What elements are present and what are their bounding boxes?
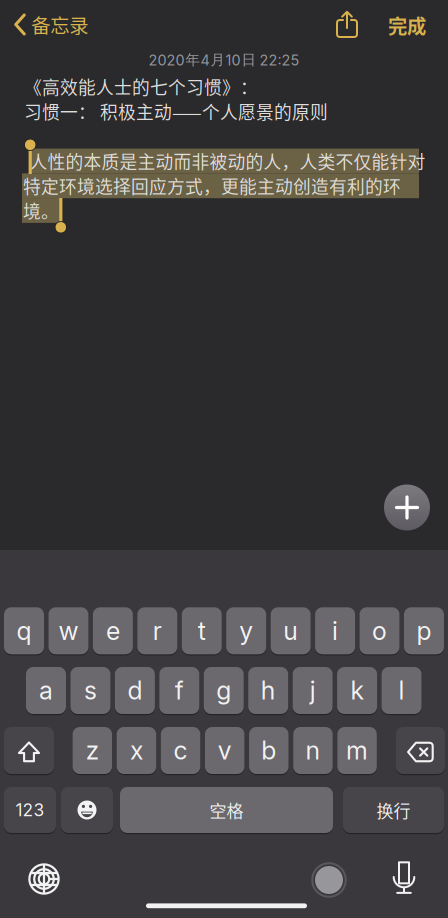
button[interactable]: a [26,666,66,715]
staticText: c [174,735,188,766]
button[interactable]: q [4,606,44,655]
button[interactable]: c [161,726,200,775]
staticText: x [130,735,143,766]
button[interactable]: u [271,606,311,655]
button[interactable]: 123 [4,786,56,834]
button[interactable]: j [293,666,333,715]
button[interactable]: l [381,666,421,715]
staticText: 境。 [23,198,59,223]
button[interactable]: 新建备忘录 [384,484,430,530]
staticText: 换行 [376,798,410,822]
button[interactable]: b [249,726,289,775]
staticText: h [261,675,276,706]
button[interactable]: 辅助触控 [311,862,346,897]
staticText: l [398,675,404,706]
staticText: b [261,735,276,766]
staticText: d [127,675,142,706]
staticText: 特定环境选择回应方式，更能主动创造有利的环 [23,173,401,199]
staticText: n [305,735,320,766]
staticText: 《高效能人士的七个习惯》： [24,74,258,99]
button[interactable]: g [204,666,244,715]
staticText: 2020 年 4 月 10 日 22:25 [148,51,299,69]
staticText: e [106,616,120,646]
button[interactable]: 听写 [389,861,419,894]
button[interactable]: p [404,606,444,655]
button[interactable]: 空格 [120,786,333,834]
button[interactable]: z [72,726,112,775]
staticText: p [416,616,431,646]
button[interactable]: x [117,726,156,775]
staticText: s [84,675,97,706]
button[interactable]: Shift [4,726,54,775]
button[interactable]: 完成 [388,10,426,40]
button[interactable]: h [248,666,288,715]
button[interactable]: o [359,606,399,655]
staticText: v [218,735,232,766]
button[interactable]: m [337,726,377,775]
staticText: q [16,616,31,646]
staticText: o [372,616,387,646]
button[interactable]: t [182,606,222,655]
button[interactable]: r [137,606,177,655]
staticText: 完成 [388,11,426,39]
staticText: a [39,675,53,706]
button[interactable]: n [293,726,333,775]
staticText: k [351,675,364,706]
staticText: w [58,616,78,646]
staticText: j [310,675,316,706]
staticText: z [86,735,99,766]
button[interactable]: 返回 备忘录 [16,6,88,42]
button[interactable]: k [337,666,377,715]
button[interactable]: v [205,726,244,775]
staticText: m [346,735,368,766]
staticText: 备忘录 [31,10,88,38]
staticText: t [198,616,206,646]
button[interactable]: 表情 [61,786,113,834]
button[interactable]: s [70,666,110,715]
button[interactable]: i [315,606,355,655]
button[interactable]: 下一个键盘 [28,863,59,894]
button[interactable]: 换行 [343,786,444,834]
button[interactable]: d [115,666,155,715]
staticText: f [175,675,184,706]
staticText: r [153,616,162,646]
button[interactable]: w [48,606,88,655]
button[interactable]: e [93,606,133,655]
staticText: g [216,675,231,706]
button[interactable]: 删除 [396,726,445,775]
button[interactable]: 共享 [332,9,362,39]
button[interactable]: y [226,606,266,655]
staticText: 习惯一： 积极主动——个人愿景的原则 [24,98,328,124]
staticText: 空格 [209,798,243,822]
staticText: u [283,616,298,646]
staticText: 123 [15,799,44,820]
button[interactable]: f [159,666,199,715]
staticText: i [332,616,338,646]
staticText: 人性的本质是主动而非被动的人，人类不仅能针对 [29,148,425,174]
staticText: y [239,616,253,646]
